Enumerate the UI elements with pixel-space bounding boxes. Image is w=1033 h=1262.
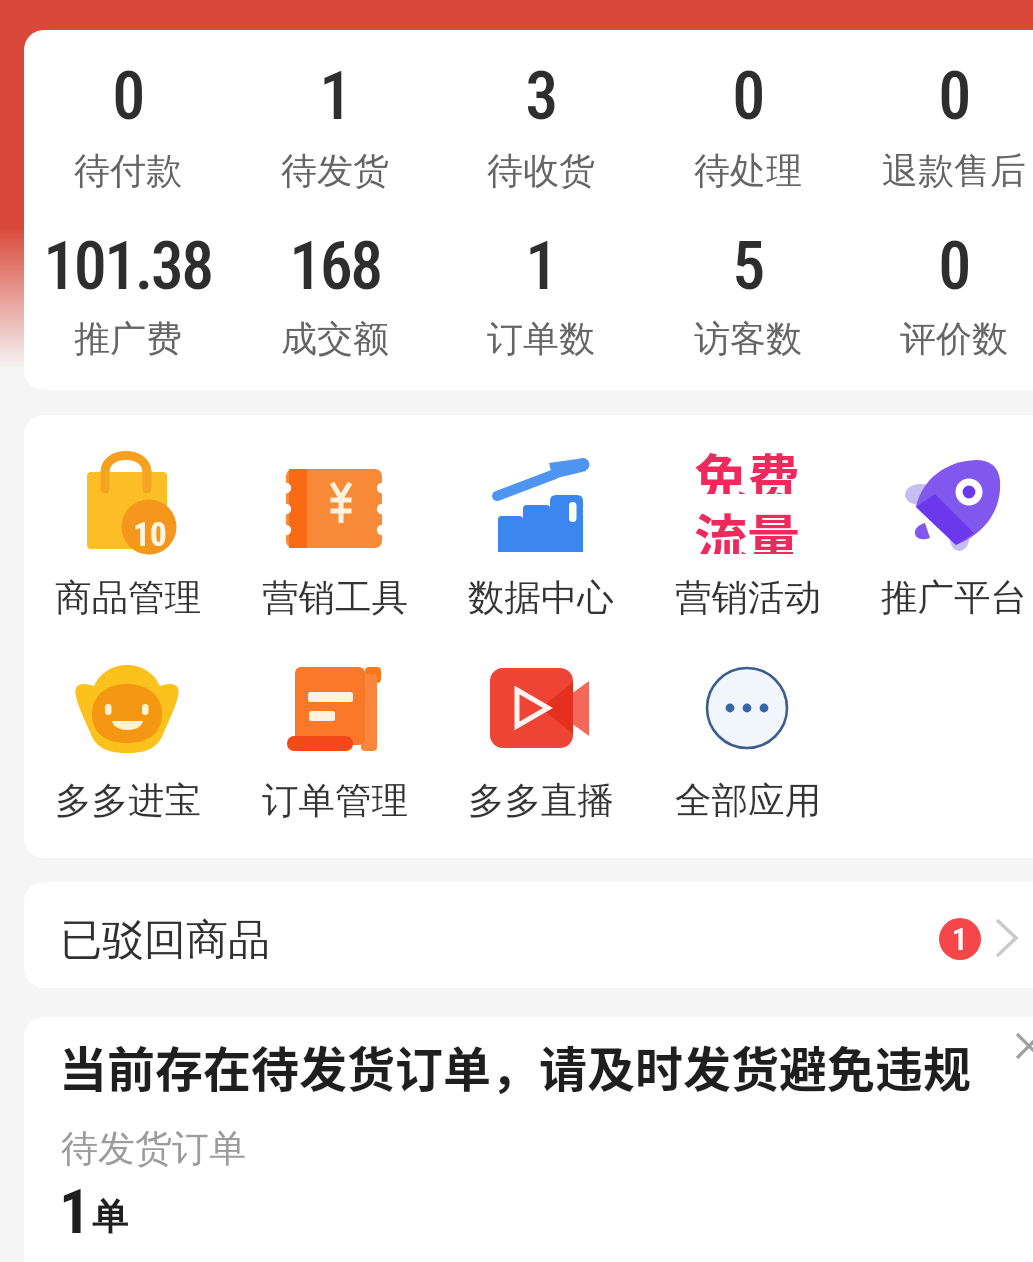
- button[interactable]: 10: [24, 442, 231, 628]
- staticText: 免费: [694, 438, 800, 494]
- staticText: 0: [938, 228, 969, 305]
- staticText: 1: [319, 58, 350, 135]
- staticText: 当前存在待发货订单，请及时发货避免违规: [59, 1031, 972, 1101]
- button[interactable]: 101.38: [24, 211, 231, 390]
- staticText: 推广费: [74, 316, 182, 361]
- staticText: 推广平台: [881, 575, 1027, 621]
- button[interactable]: 5: [644, 211, 851, 390]
- staticText: 已驳回商品: [60, 914, 270, 967]
- staticText: 待付款: [74, 148, 182, 193]
- staticText: 0: [112, 58, 143, 135]
- button[interactable]: 3: [437, 41, 644, 225]
- staticText: 1: [59, 1175, 91, 1248]
- staticText: 单: [92, 1194, 128, 1239]
- staticText: 退款售后: [882, 148, 1026, 193]
- staticText: 1: [525, 228, 556, 305]
- staticText: 多多进宝: [55, 778, 201, 824]
- staticText: 订单管理: [262, 778, 408, 824]
- staticText: 商品管理: [55, 575, 201, 621]
- staticText: 数据中心: [468, 575, 614, 621]
- button[interactable]: 多多直播: [437, 647, 644, 831]
- button[interactable]: 1: [437, 211, 644, 390]
- button[interactable]: 免费: [644, 442, 851, 628]
- button[interactable]: 多多进宝: [24, 647, 231, 831]
- staticText: 1: [952, 921, 968, 957]
- staticText: 待发货订单: [61, 1125, 246, 1172]
- staticText: 多多直播: [468, 778, 614, 824]
- staticText: 订单数: [487, 316, 595, 361]
- button[interactable]: 0: [850, 41, 1033, 225]
- button[interactable]: 0: [24, 41, 231, 225]
- staticText: 待发货: [281, 148, 389, 193]
- button[interactable]: 营销工具: [231, 442, 438, 628]
- staticText: 待处理: [694, 148, 802, 193]
- staticText: 成交额: [281, 316, 389, 361]
- staticText: 168: [289, 228, 381, 305]
- staticText: 0: [938, 58, 969, 135]
- staticText: 10: [133, 515, 167, 554]
- staticText: 全部应用: [675, 778, 821, 824]
- staticText: 5: [732, 228, 763, 305]
- staticText: 评价数: [900, 316, 1008, 361]
- button[interactable]: 全部应用: [644, 647, 851, 831]
- button[interactable]: 订单管理: [231, 647, 438, 831]
- button[interactable]: Close notice: [995, 1017, 1033, 1080]
- staticText: 营销工具: [262, 575, 408, 621]
- button[interactable]: 已驳回商品: [24, 882, 1033, 988]
- button[interactable]: 168: [231, 211, 438, 390]
- staticText: 101.38: [43, 228, 212, 305]
- staticText: 待收货: [487, 148, 595, 193]
- staticText: 访客数: [694, 316, 802, 361]
- staticText: 0: [732, 58, 763, 135]
- staticText: 流量: [694, 498, 800, 554]
- button[interactable]: 数据中心: [437, 442, 644, 628]
- staticText: 营销活动: [675, 575, 821, 621]
- button[interactable]: 推广平台: [850, 442, 1033, 628]
- button[interactable]: 0: [644, 41, 851, 225]
- staticText: 3: [525, 58, 556, 135]
- button[interactable]: 1: [231, 41, 438, 225]
- button[interactable]: 0: [850, 211, 1033, 390]
